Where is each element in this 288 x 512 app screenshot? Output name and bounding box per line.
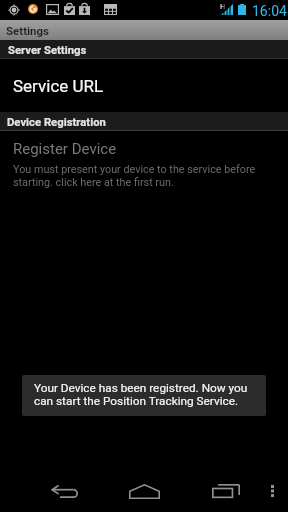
button[interactable]: More options bbox=[257, 472, 288, 506]
staticText: Service URL bbox=[13, 76, 104, 96]
staticText: You must present your device to the serv… bbox=[13, 163, 279, 189]
staticText: 16:04 bbox=[252, 3, 287, 19]
staticText: H bbox=[220, 2, 226, 11]
button[interactable]: Home bbox=[123, 472, 166, 506]
button[interactable]: Register Device bbox=[0, 131, 288, 191]
staticText: Settings bbox=[6, 24, 50, 37]
button[interactable]: Recent apps bbox=[204, 472, 247, 506]
staticText: Server Settings bbox=[8, 44, 87, 57]
staticText: Register Device bbox=[13, 140, 117, 158]
button[interactable]: Back bbox=[43, 472, 86, 506]
button[interactable]: Service URL bbox=[0, 59, 288, 112]
staticText: Device Registration bbox=[7, 116, 106, 129]
staticText: Your Device has been registred. Now you … bbox=[34, 381, 254, 408]
